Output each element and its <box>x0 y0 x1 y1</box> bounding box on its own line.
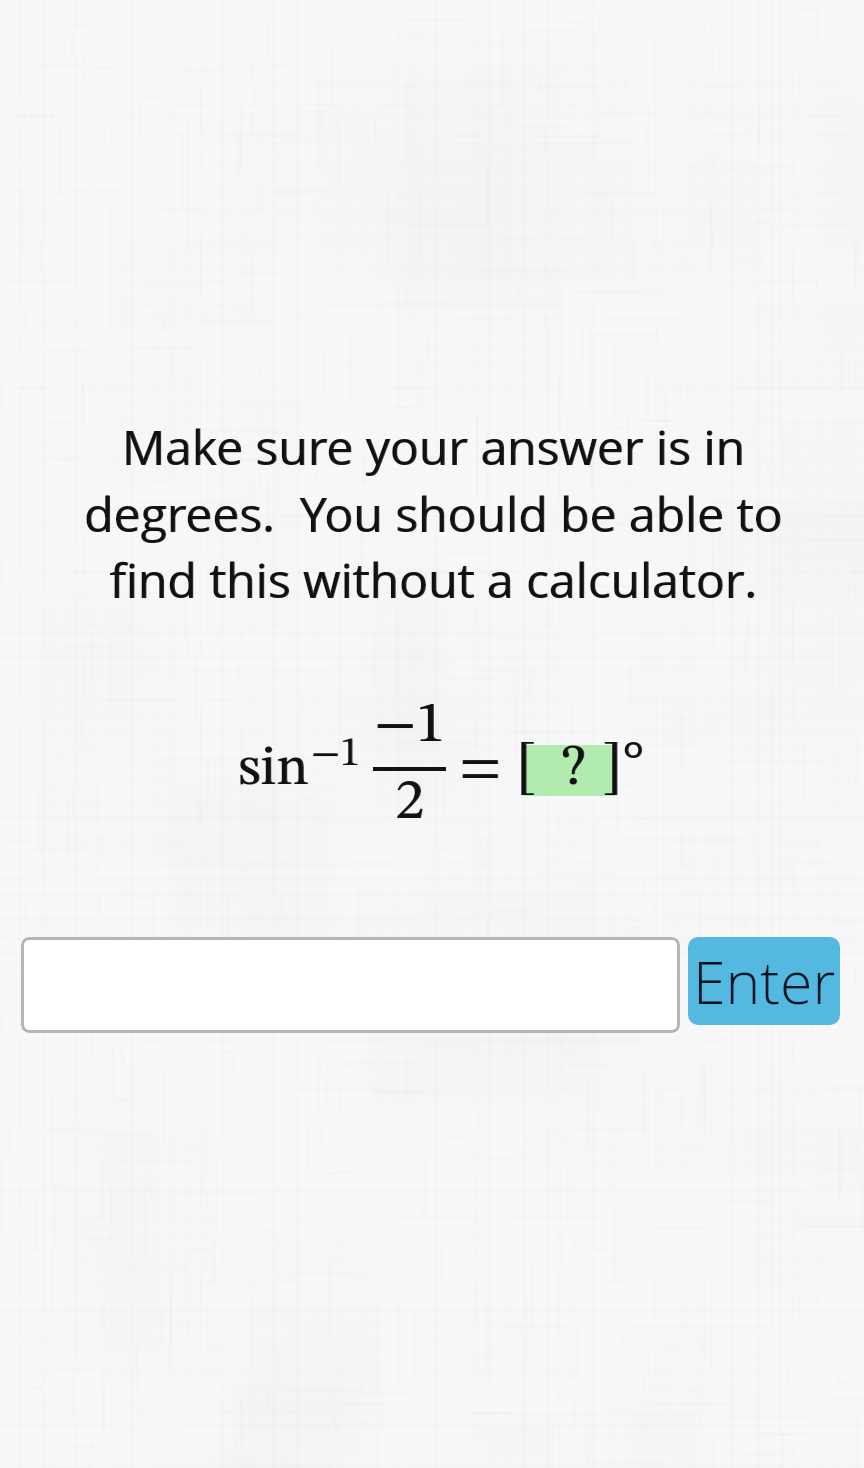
staticText: −1 <box>374 697 445 755</box>
staticText: ] <box>603 741 623 798</box>
button[interactable]: Answer input field <box>21 937 680 1033</box>
staticText: −1 <box>375 697 446 755</box>
staticText: ? <box>562 740 586 798</box>
staticText: Enter <box>693 941 836 1021</box>
staticText: ° <box>622 738 644 792</box>
button[interactable]: Enter <box>688 937 840 1025</box>
staticText: −1 <box>312 735 361 775</box>
staticText: = <box>460 740 502 798</box>
staticText: −1 <box>311 735 360 775</box>
staticText: Make sure your answer is in degrees. You… <box>2 414 864 612</box>
staticText: ? <box>561 740 585 798</box>
staticText: [ <box>516 741 536 798</box>
staticText: ° <box>623 738 645 792</box>
staticText: Make sure your answer is in degrees. You… <box>1 414 864 612</box>
staticText: ] <box>602 741 622 798</box>
staticText: 2 <box>395 774 424 832</box>
staticText: 2 <box>396 774 425 832</box>
staticText: sin <box>238 741 309 797</box>
staticText: sin <box>239 741 310 797</box>
staticText: [ <box>517 741 537 798</box>
staticText: = <box>459 740 501 798</box>
